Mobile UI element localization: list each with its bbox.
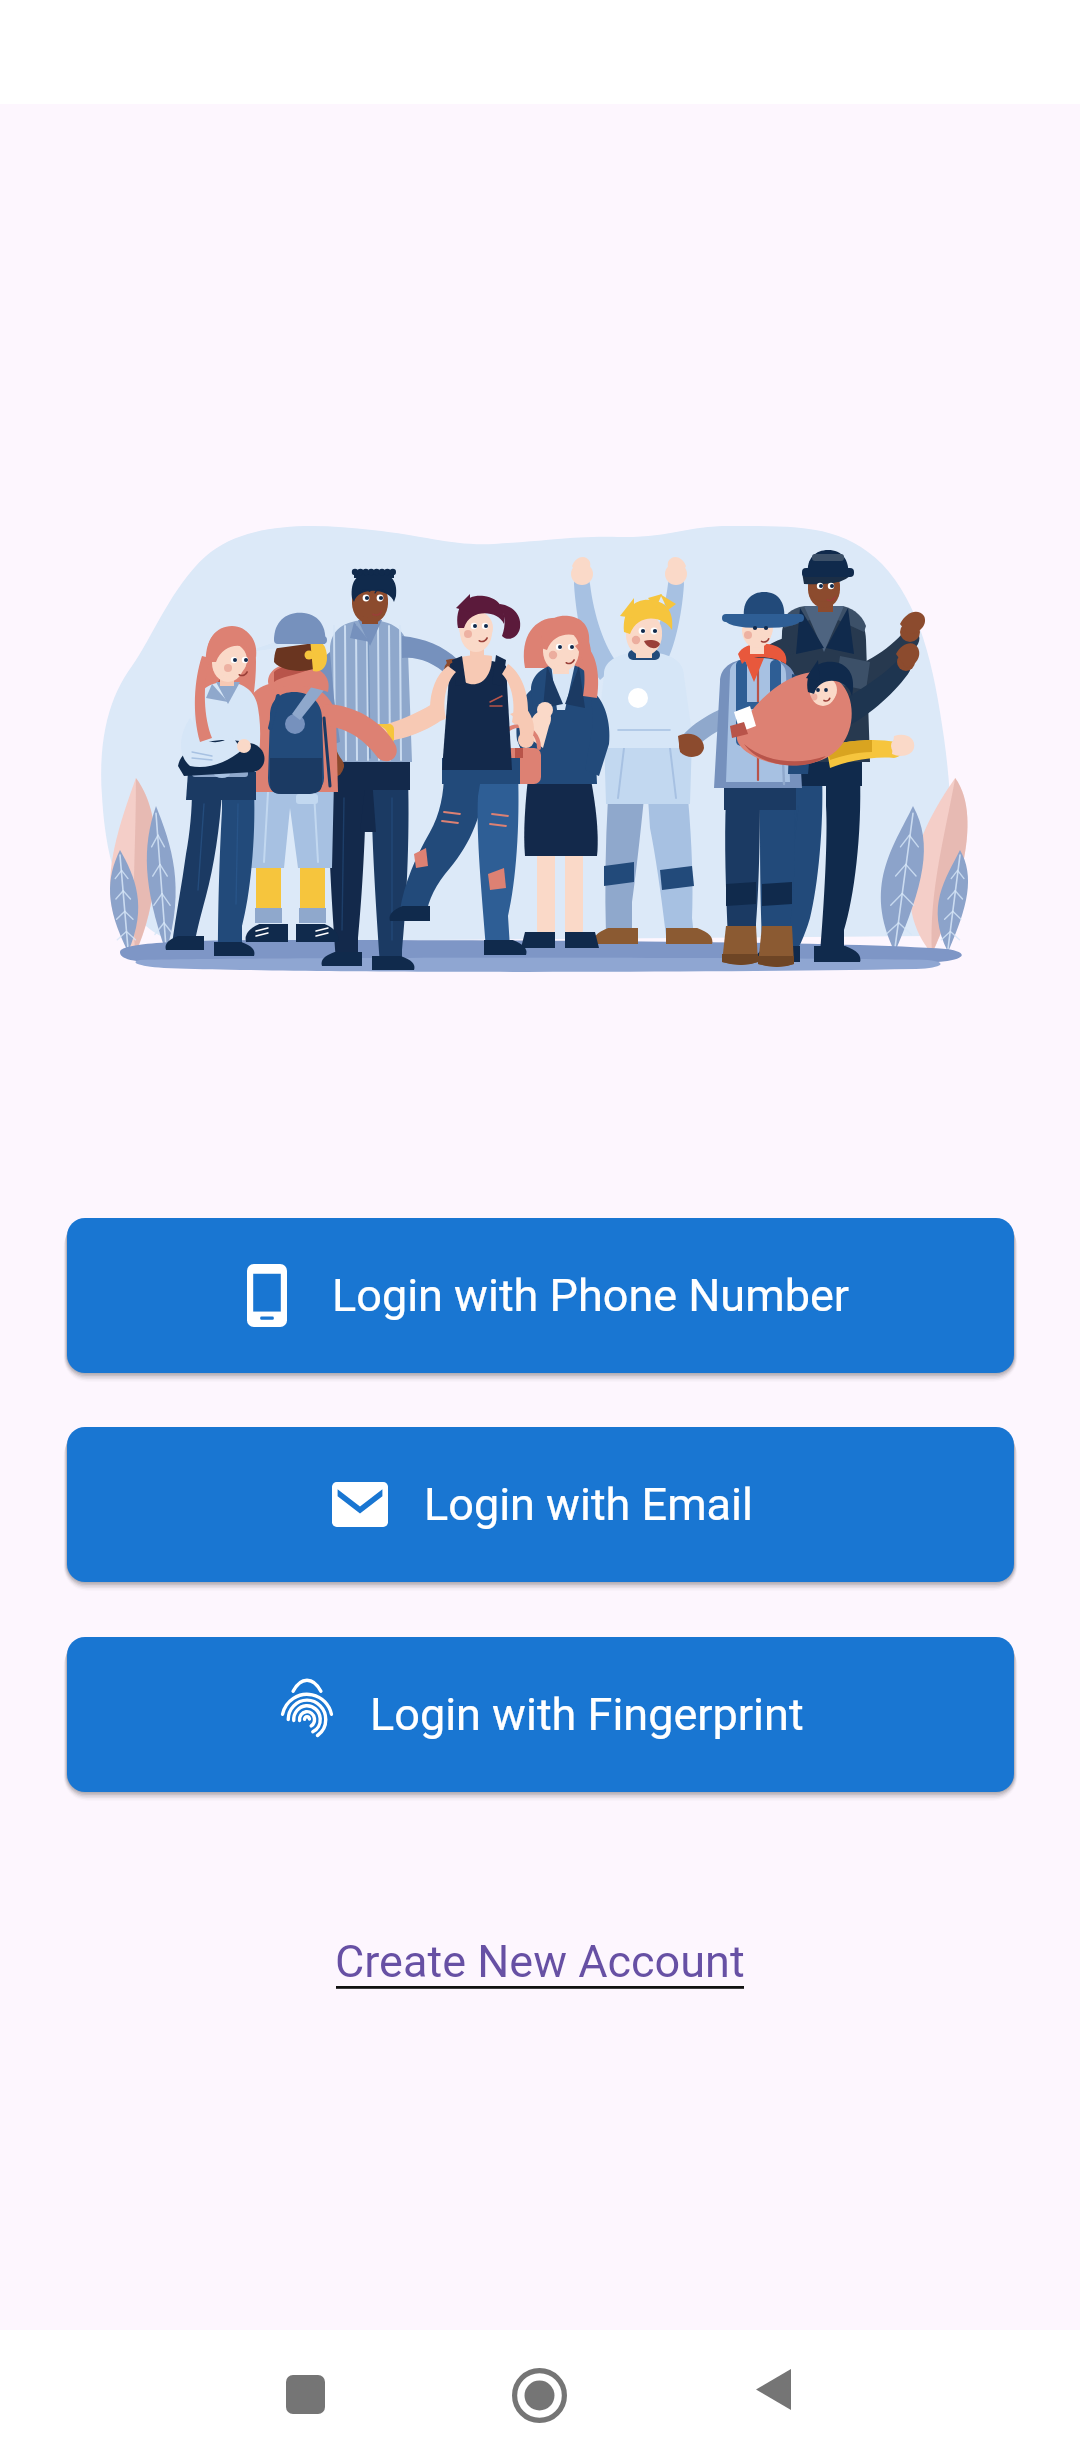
button[interactable]: Home xyxy=(512,2368,567,2423)
button[interactable]: Recent apps xyxy=(286,2375,325,2414)
staticText: Login with Email xyxy=(424,1478,753,1531)
button[interactable]: Create New Account xyxy=(320,1916,760,2008)
staticText: Login with Fingerprint xyxy=(370,1688,804,1741)
staticText: Create New Account xyxy=(335,1935,745,1988)
staticText: Login with Phone Number xyxy=(332,1269,850,1322)
button[interactable]: Login with Email xyxy=(67,1427,1014,1582)
button[interactable]: Login with Phone Number xyxy=(67,1218,1014,1373)
button[interactable]: Login with Fingerprint xyxy=(67,1637,1014,1792)
button[interactable]: Back xyxy=(755,2367,791,2412)
